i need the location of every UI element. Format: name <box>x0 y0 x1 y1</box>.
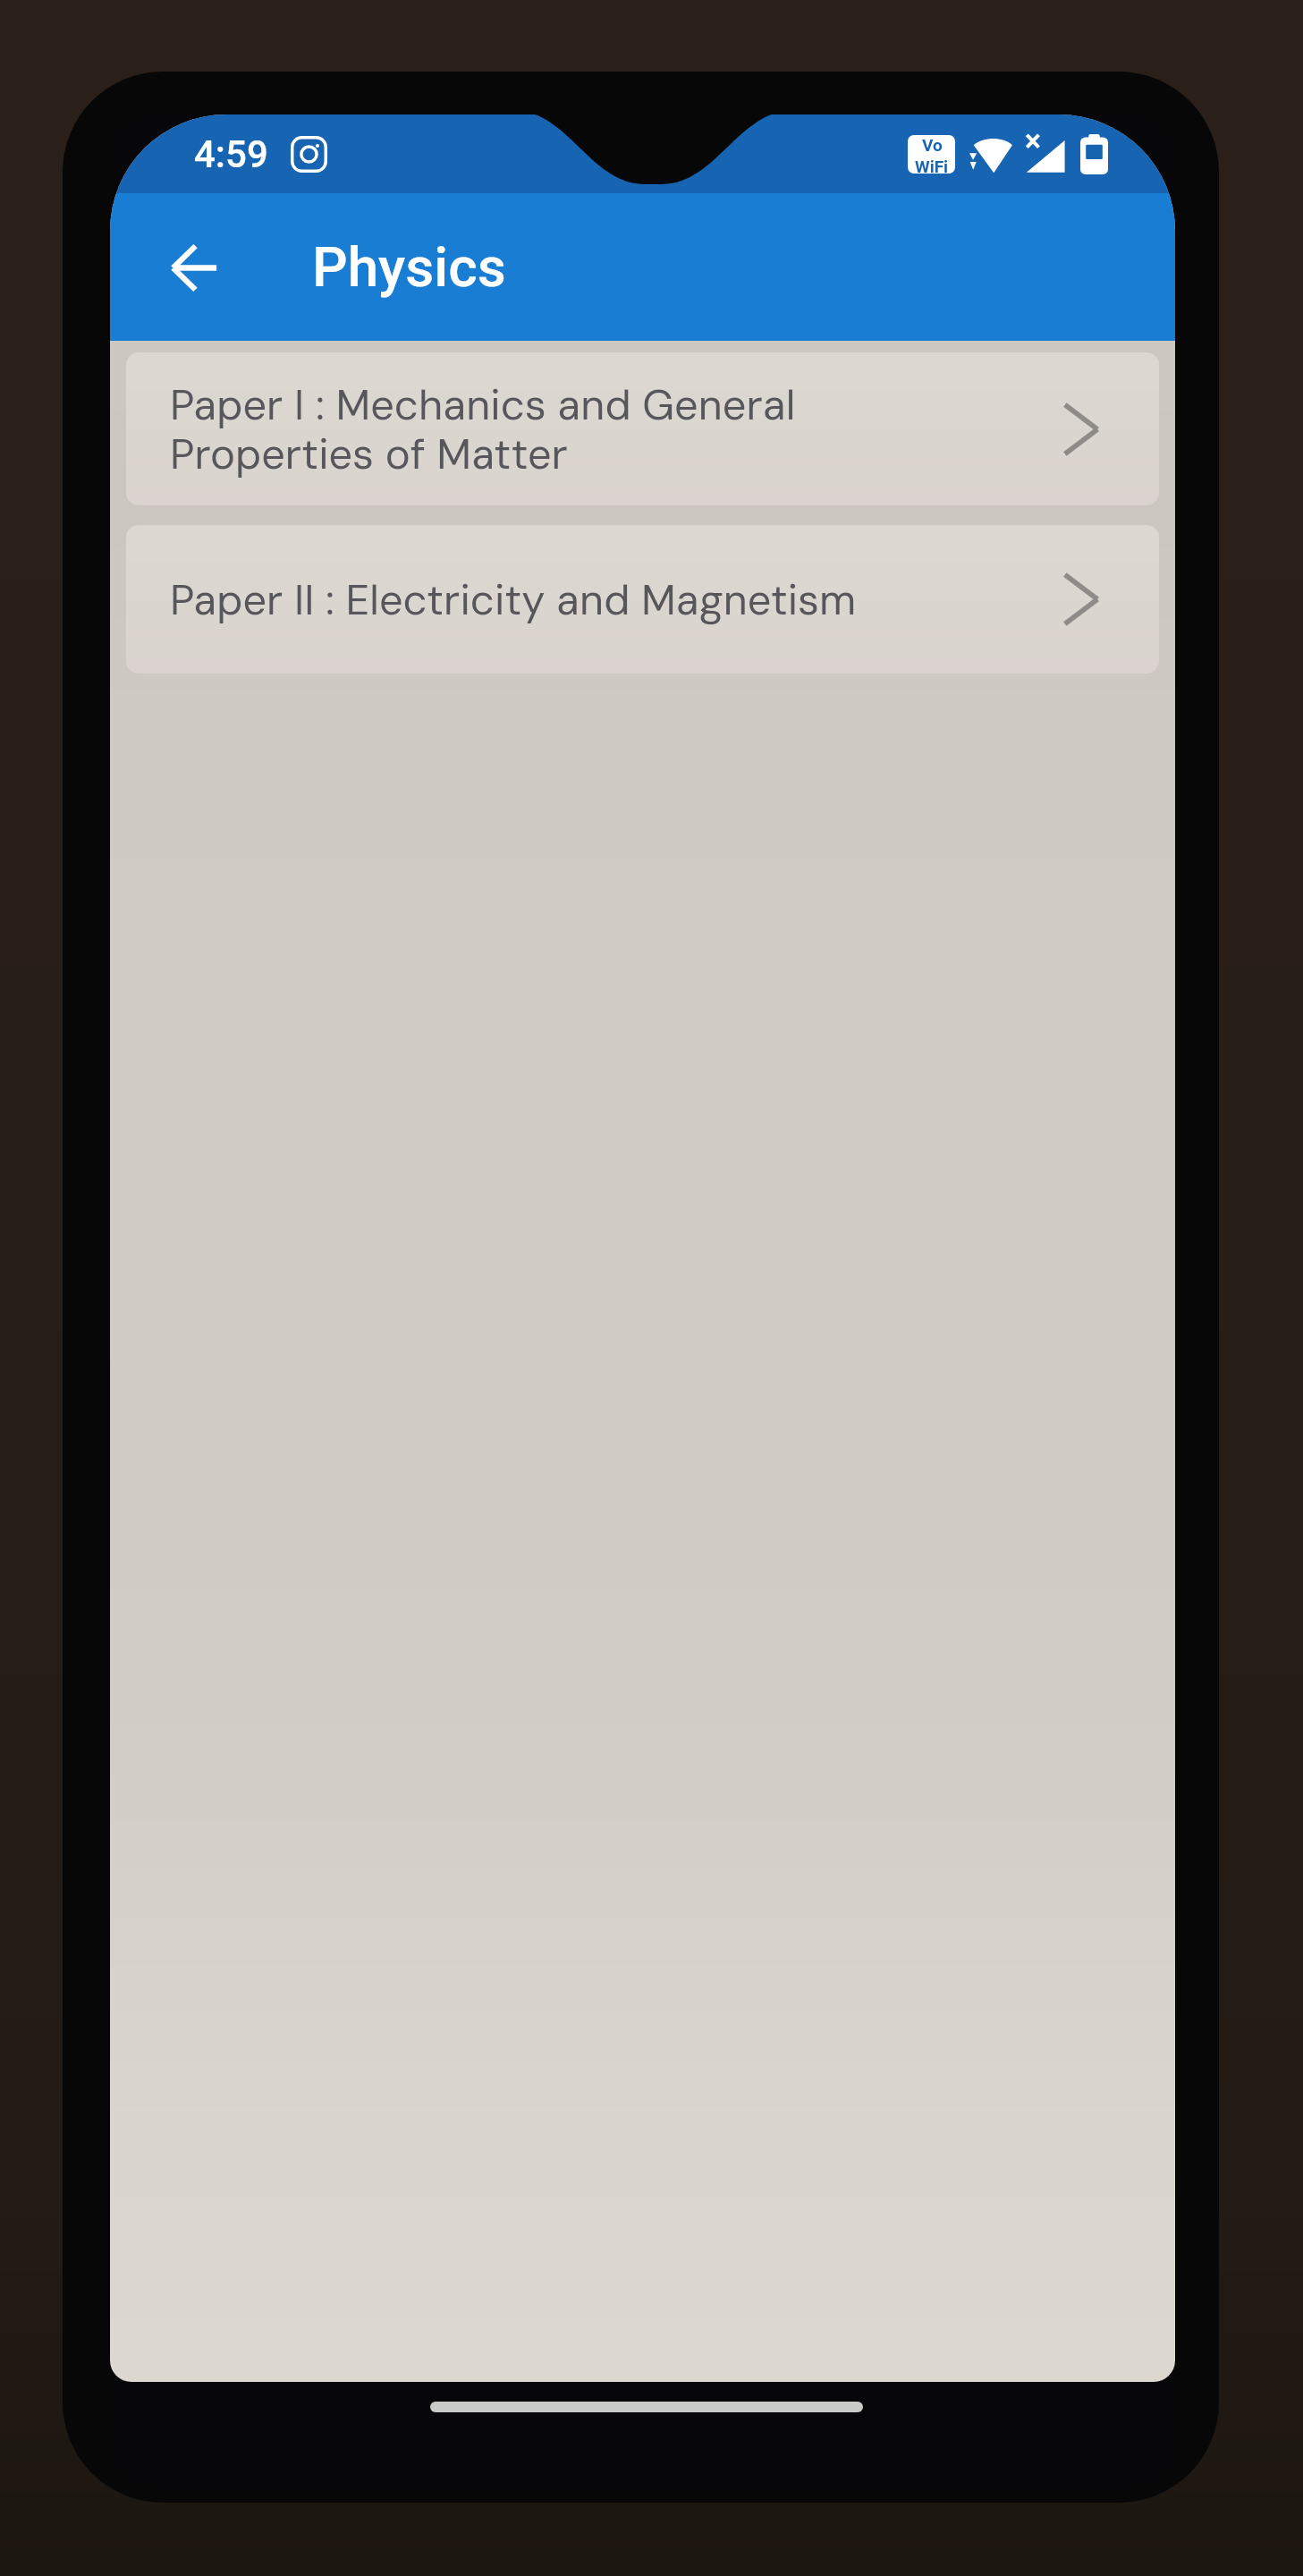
staticText: Physics <box>312 234 506 300</box>
staticText: Paper I : Mechanics and General Properti… <box>170 377 1037 481</box>
staticText: Paper II : Electricity and Magnetism <box>170 572 1037 627</box>
staticText: 4:59 <box>194 132 268 176</box>
button[interactable]: Back <box>151 225 237 310</box>
staticText: Vo <box>922 135 943 155</box>
staticText: WiFi <box>915 157 949 174</box>
button[interactable]: Paper I : Mechanics and General Properti… <box>126 352 1159 505</box>
button[interactable]: Paper II : Electricity and Magnetism <box>126 525 1159 674</box>
